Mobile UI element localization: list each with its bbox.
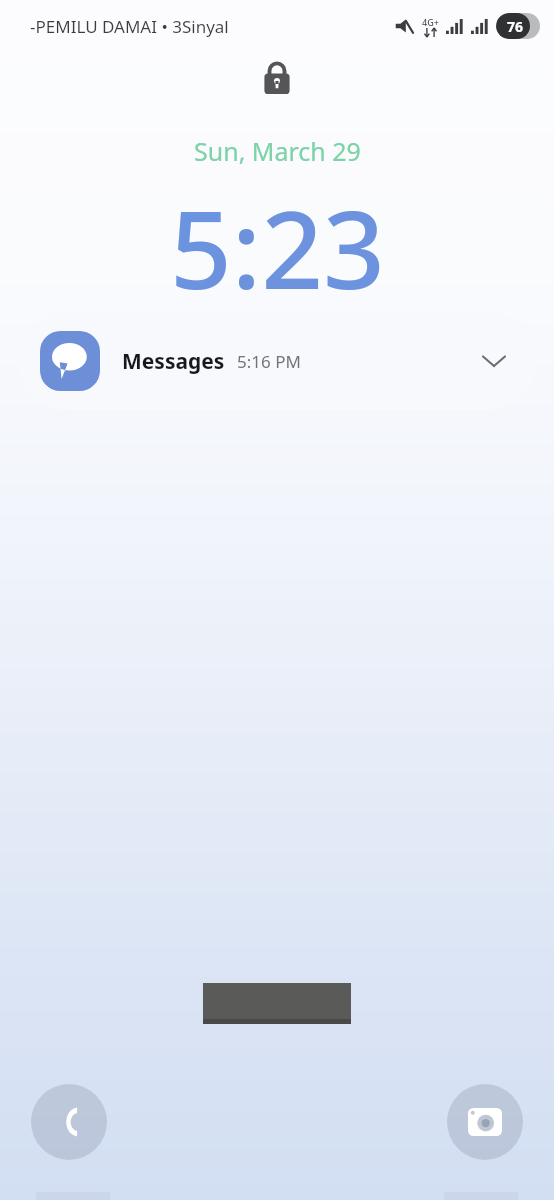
staticText: 5:16 PM [237, 350, 301, 373]
staticText: 4G+ [422, 16, 439, 28]
staticText: Messages [122, 347, 225, 376]
other: Locked [262, 60, 292, 94]
staticText: Sun, March 29 [194, 134, 361, 168]
button[interactable]: Phone [31, 1084, 107, 1160]
staticText: 5:23 [170, 174, 385, 321]
button[interactable]: Camera [447, 1084, 523, 1160]
button[interactable]: Expand notification [474, 341, 514, 381]
staticText: -PEMILU DAMAI • 3Sinyal [30, 15, 252, 38]
staticText: 76 [507, 17, 524, 36]
button[interactable]: Messages [18, 312, 536, 410]
